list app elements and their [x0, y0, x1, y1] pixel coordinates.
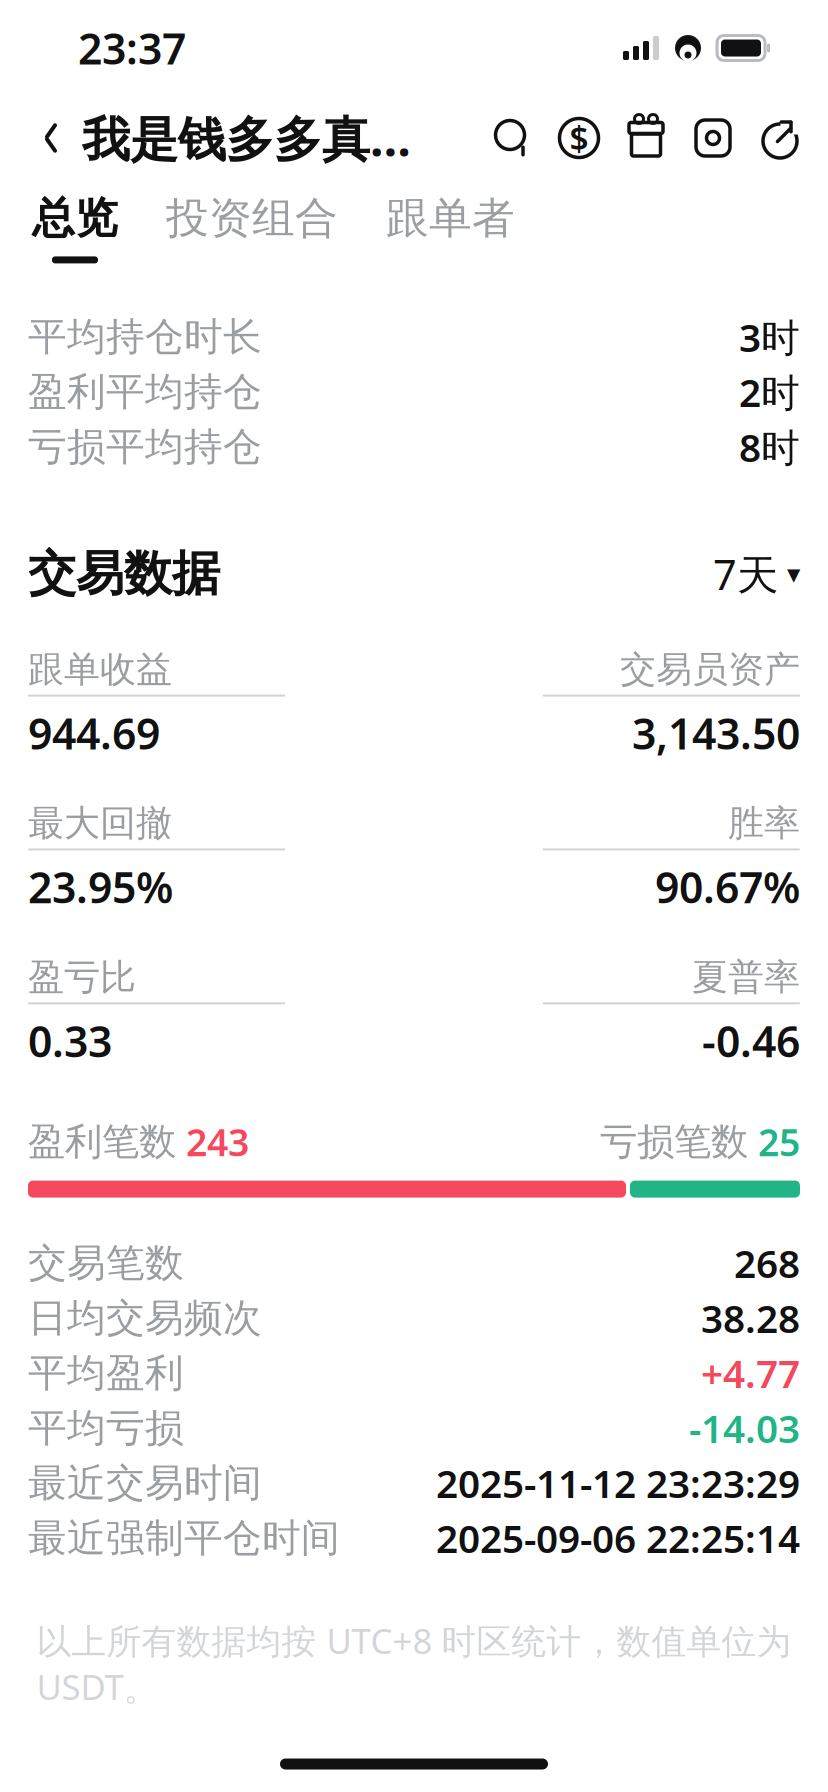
staticText: 夏普率: [692, 955, 800, 999]
staticText: 2025-11-12 23:23:29: [436, 1457, 800, 1509]
button[interactable]: 投资组合: [162, 192, 342, 263]
staticText: 944.69: [28, 705, 160, 761]
staticText: 亏损笔数: [600, 1119, 748, 1165]
staticText: 最近强制平仓时间: [28, 1514, 340, 1562]
staticText: 跟单者: [386, 192, 515, 244]
staticText: 3,143.50: [632, 705, 800, 761]
button[interactable]: 总览: [28, 192, 122, 263]
staticText: 38.28: [701, 1292, 800, 1344]
staticText: 2时: [739, 366, 800, 417]
staticText: 我是钱多多真…: [82, 106, 411, 170]
staticText: -14.03: [689, 1402, 800, 1454]
staticText: -0.46: [702, 1012, 800, 1069]
staticText: 3时: [739, 311, 800, 362]
staticText: 盈亏比: [28, 955, 136, 999]
button[interactable]: 7天: [713, 546, 800, 601]
staticText: 平均盈利: [28, 1349, 184, 1397]
button[interactable]: Back: [26, 110, 76, 166]
staticText: 8时: [739, 421, 800, 472]
staticText: $: [569, 116, 588, 160]
staticText: 最近交易时间: [28, 1459, 262, 1507]
button[interactable]: Rewards: [624, 116, 668, 160]
button[interactable]: 跟单者: [382, 192, 519, 263]
button[interactable]: Earnings: [557, 116, 601, 160]
staticText: 胜率: [728, 801, 800, 845]
staticText: 亏损平均持仓: [28, 423, 262, 471]
staticText: 2025-09-06 22:25:14: [436, 1512, 800, 1564]
button[interactable]: Search: [490, 116, 534, 160]
staticText: 平均亏损: [28, 1404, 184, 1452]
button[interactable]: Share: [758, 116, 802, 160]
staticText: 90.67%: [655, 858, 800, 915]
staticText: 交易数据: [28, 544, 220, 603]
staticText: 投资组合: [166, 192, 338, 244]
staticText: 跟单收益: [28, 647, 172, 692]
staticText: 平均持仓时长: [28, 313, 262, 361]
staticText: 日均交易频次: [28, 1294, 262, 1342]
staticText: 7天: [713, 546, 778, 601]
staticText: 盈利平均持仓: [28, 368, 262, 416]
staticText: +4.77: [701, 1347, 800, 1399]
staticText: 最大回撤: [28, 801, 172, 845]
staticText: 交易笔数: [28, 1239, 184, 1287]
staticText: 盈利笔数: [28, 1119, 176, 1165]
staticText: 268: [734, 1237, 800, 1289]
staticText: ▾: [787, 559, 800, 589]
staticText: 0.33: [28, 1012, 112, 1069]
button[interactable]: Settings: [691, 116, 735, 160]
staticText: 总览: [32, 192, 118, 244]
staticText: 23.95%: [28, 858, 173, 915]
staticText: 243: [176, 1117, 249, 1167]
staticText: 23:37: [78, 20, 186, 76]
staticText: 25: [748, 1117, 800, 1167]
staticText: 以上所有数据均按 UTC+8 时区统计，数值单位为 USDT。: [36, 1618, 791, 1710]
staticText: 交易员资产: [620, 647, 800, 692]
